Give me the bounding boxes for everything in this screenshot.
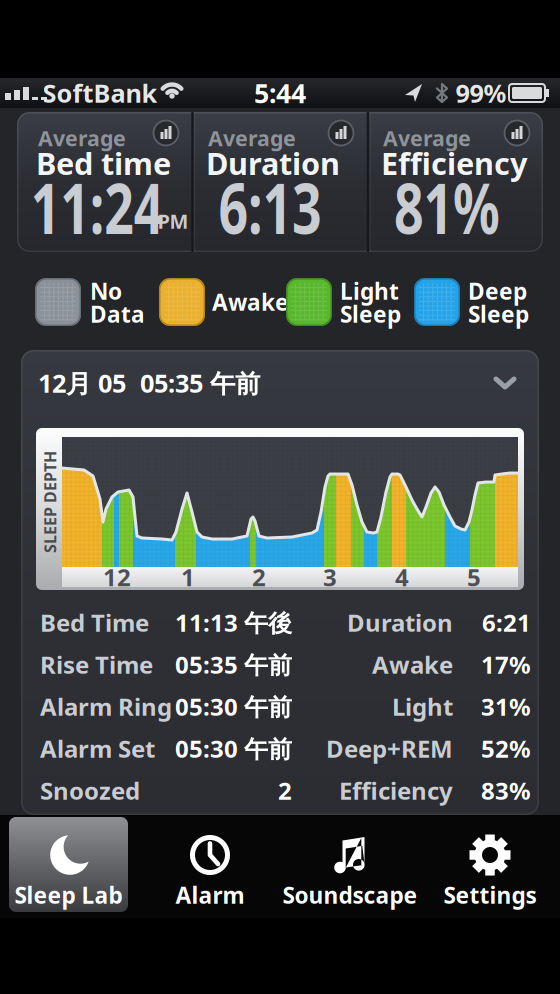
staticText: Data [90,299,145,329]
staticText: Deep+REM [326,733,453,764]
staticText: 2 [252,561,266,593]
button[interactable]: Statistics chart [504,120,530,146]
staticText: 05:30 午前 [175,733,292,764]
staticText: 1 [181,561,195,593]
staticText: Average [208,124,296,152]
staticText: 2 [278,775,292,806]
staticText: Light [392,691,453,722]
button[interactable]: Alarm [140,817,280,912]
staticText: 05:35 午前 [175,649,292,680]
staticText: 05:30 午前 [175,691,292,722]
staticText: Bed time [36,143,171,183]
staticText: SoftBank [42,76,157,110]
staticText: Settings [443,880,536,910]
staticText: No [90,276,122,306]
staticText: 3 [323,561,337,593]
staticText: 5:44 [254,75,306,111]
staticText: 81% [373,159,520,255]
button[interactable]: Soundscape [280,817,420,912]
staticText: 31% [481,691,531,722]
staticText: 11:13 午後 [175,607,292,638]
staticText: 17% [481,649,531,680]
staticText: Light [340,276,399,306]
button[interactable]: Statistics chart [328,120,354,146]
staticText: Duration [347,607,453,638]
staticText: Efficiency [381,143,528,183]
button[interactable]: Toggle sleep session details [21,350,539,412]
staticText: Sleep [468,299,529,329]
staticText: 12 [103,561,131,593]
staticText: Soundscape [282,880,417,910]
staticText: Alarm Set [40,733,155,764]
button[interactable]: Statistics chart [153,120,179,146]
staticText: Average [38,124,126,152]
staticText: 52% [481,733,531,764]
staticText: 12月 05 05:35 午前 [38,366,260,400]
staticText: Rise Time [40,649,153,680]
staticText: Alarm [175,880,244,910]
staticText: Awake [372,649,453,680]
staticText: Bed Time [40,607,149,638]
staticText: Sleep [340,299,401,329]
staticText: 99% [455,76,506,110]
staticText: Deep [468,276,527,306]
button[interactable]: Settings [420,817,560,912]
staticText: 11:24 [5,159,189,255]
staticText: Duration [206,143,340,183]
staticText: 5 [467,561,481,593]
staticText: Alarm Ring [40,691,172,722]
staticText: 6:13 [198,159,341,255]
staticText: Awake [212,287,289,317]
staticText: Efficiency [339,775,453,806]
staticText: 6:21 [482,607,531,638]
staticText: Sleep Lab [14,880,122,910]
staticText: PM [157,208,188,234]
staticText: 4 [395,561,409,593]
staticText: Average [383,124,471,152]
button[interactable]: Sleep Lab [9,817,128,912]
staticText: 83% [481,775,531,806]
staticText: SLEEP DEPTH [0,491,101,513]
staticText: Snoozed [40,775,140,806]
